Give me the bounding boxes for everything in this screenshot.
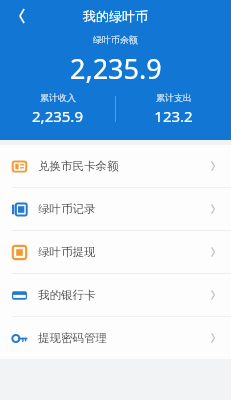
button[interactable]: 我的银行卡 xyxy=(0,274,231,316)
button[interactable]: 兑换市民卡余额 xyxy=(0,145,231,187)
staticText: 提现密码管理 xyxy=(38,331,107,345)
button[interactable]: 绿叶币记录 xyxy=(0,188,231,230)
staticText: 兑换市民卡余额 xyxy=(38,159,119,173)
staticText: 123.2 xyxy=(154,106,193,126)
staticText: 绿叶币提现 xyxy=(38,245,96,259)
staticText: 累计支出 xyxy=(156,92,192,103)
staticText: 2,235.9 xyxy=(70,50,162,87)
staticText: 绿叶币记录 xyxy=(38,202,96,216)
button[interactable]: 提现密码管理 xyxy=(0,317,231,359)
staticText: 2,235.9 xyxy=(32,106,83,126)
staticText: 累计收入 xyxy=(40,92,76,103)
button[interactable]: Back xyxy=(6,1,36,31)
staticText: 绿叶币余额 xyxy=(93,34,138,45)
button[interactable]: 绿叶币提现 xyxy=(0,231,231,273)
staticText: 我的银行卡 xyxy=(38,288,96,302)
staticText: 我的绿叶币 xyxy=(83,8,148,24)
